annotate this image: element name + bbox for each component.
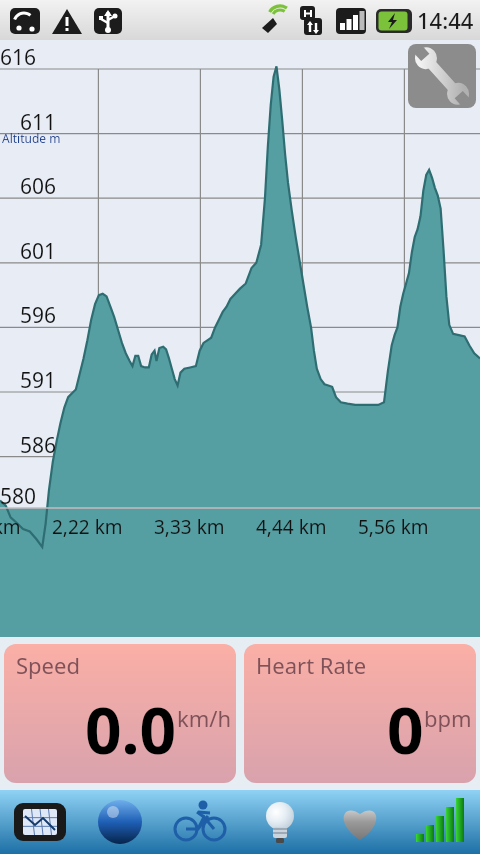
staticText: 591 — [20, 366, 57, 395]
button[interactable]: Chart — [0, 790, 80, 854]
button[interactable]: Speed — [4, 644, 236, 783]
button[interactable]: Heart Rate — [244, 644, 476, 783]
staticText: 1,11 km — [0, 514, 21, 540]
staticText: 14:44 — [417, 5, 474, 35]
button[interactable]: Statistics — [400, 790, 480, 854]
staticText: 611 — [20, 108, 57, 137]
staticText: 0 — [387, 686, 424, 773]
staticText: 580 — [0, 482, 37, 511]
staticText: 0.0 — [85, 686, 177, 773]
staticText: 14:44 — [417, 5, 474, 35]
staticText: Altitude m — [2, 130, 61, 146]
button[interactable]: Activity — [160, 790, 240, 854]
staticText: 2,22 km — [52, 514, 123, 540]
staticText: bpm — [424, 703, 472, 733]
staticText: 5,56 km — [358, 514, 429, 540]
staticText: Speed — [16, 650, 80, 680]
button[interactable]: Settings — [408, 44, 476, 108]
button[interactable]: Map — [80, 790, 160, 854]
staticText: 3,33 km — [154, 514, 225, 540]
staticText: 586 — [20, 431, 57, 460]
staticText: km/h — [177, 703, 232, 733]
staticText: 4,44 km — [256, 514, 327, 540]
staticText: 601 — [20, 237, 57, 266]
staticText: Heart Rate — [256, 650, 367, 680]
button[interactable]: Light — [240, 790, 320, 854]
button[interactable]: Heart Rate — [320, 790, 400, 854]
staticText: 596 — [20, 301, 57, 330]
staticText: 606 — [20, 172, 57, 201]
staticText: 616 — [0, 43, 37, 72]
